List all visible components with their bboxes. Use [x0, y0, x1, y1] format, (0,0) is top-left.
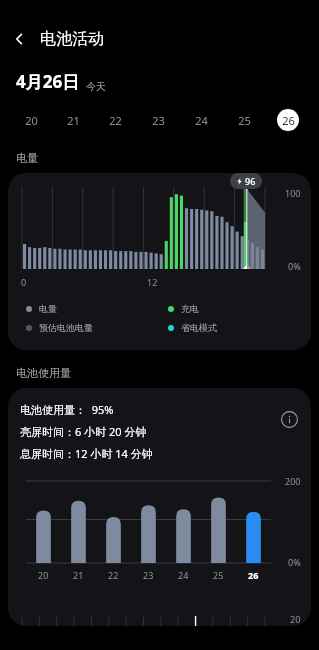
- staticText: 100: [285, 187, 301, 199]
- button[interactable]: 20: [10, 105, 52, 135]
- staticText: 96: [245, 175, 256, 187]
- staticText: 电量: [39, 303, 57, 314]
- button[interactable]: 0: [8, 173, 311, 350]
- staticText: 电池使用量： 95%: [20, 402, 114, 417]
- staticText: 25: [238, 113, 251, 128]
- staticText: 23: [143, 569, 154, 581]
- staticText: 20: [290, 613, 301, 625]
- button[interactable]: Back: [0, 22, 40, 56]
- button[interactable]: 电池使用量： 95%: [8, 388, 311, 626]
- staticText: 22: [108, 569, 119, 581]
- staticText: 电池活动: [40, 29, 104, 49]
- staticText: 亮屏时间：6 小时 20 分钟: [20, 424, 147, 439]
- staticText: 息屏时间：12 小时 14 分钟: [20, 446, 153, 461]
- staticText: 充电: [181, 303, 199, 314]
- staticText: 电池使用量: [16, 366, 71, 380]
- staticText: 0%: [288, 260, 301, 272]
- staticText: 今天: [86, 80, 106, 93]
- staticText: 22: [109, 113, 122, 128]
- staticText: 12: [147, 276, 158, 288]
- staticText: 省电模式: [181, 322, 217, 333]
- button[interactable]: 23: [137, 105, 180, 135]
- staticText: 26: [282, 113, 295, 128]
- staticText: 23: [152, 113, 165, 128]
- staticText: 电量: [16, 151, 38, 165]
- staticText: 25: [213, 569, 224, 581]
- button[interactable]: 24: [180, 105, 223, 135]
- button[interactable]: 26: [266, 105, 309, 135]
- staticText: 200: [285, 475, 301, 487]
- button[interactable]: 22: [94, 105, 137, 135]
- staticText: 21: [67, 113, 80, 128]
- staticText: 0: [21, 276, 27, 288]
- button[interactable]: 21: [52, 105, 94, 135]
- staticText: 20: [38, 569, 49, 581]
- staticText: 24: [178, 569, 189, 581]
- staticText: 21: [73, 569, 84, 581]
- staticText: 20: [25, 113, 38, 128]
- staticText: 预估电池电量: [39, 322, 93, 333]
- staticText: 4月26日: [16, 70, 80, 93]
- staticText: 24: [195, 113, 208, 128]
- button[interactable]: 25: [223, 105, 266, 135]
- staticText: 0%: [288, 556, 301, 568]
- staticText: 26: [248, 569, 259, 581]
- button[interactable]: Info: [277, 402, 301, 436]
